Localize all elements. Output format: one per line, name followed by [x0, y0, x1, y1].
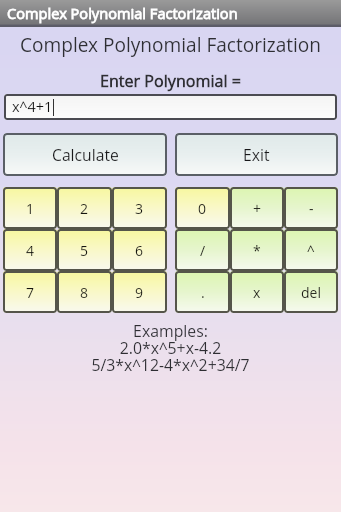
- staticText: Examples:: [0, 320, 341, 342]
- staticText: /: [200, 241, 206, 260]
- button[interactable]: Exit: [175, 133, 338, 176]
- staticText: 4: [26, 241, 35, 260]
- button[interactable]: 7: [3, 271, 57, 313]
- staticText: Enter Polynomial =: [0, 70, 341, 92]
- staticText: Calculate: [52, 144, 119, 165]
- staticText: +: [253, 199, 262, 218]
- button[interactable]: 0: [175, 187, 230, 229]
- button[interactable]: 1: [3, 187, 57, 229]
- staticText: ^: [307, 241, 315, 260]
- staticText: x^4+1: [12, 97, 53, 117]
- button[interactable]: 8: [57, 271, 112, 313]
- button[interactable]: ^: [284, 229, 338, 271]
- staticText: x: [253, 283, 261, 302]
- button[interactable]: Calculate: [3, 133, 167, 176]
- staticText: 6: [135, 241, 144, 260]
- button[interactable]: -: [284, 187, 338, 229]
- staticText: 1: [26, 199, 35, 218]
- button[interactable]: +: [230, 187, 284, 229]
- staticText: 2: [80, 199, 89, 218]
- staticText: Exit: [243, 144, 270, 165]
- button[interactable]: /: [175, 229, 230, 271]
- staticText: 8: [80, 283, 89, 302]
- button[interactable]: 3: [112, 187, 167, 229]
- button[interactable]: 9: [112, 271, 167, 313]
- button[interactable]: 5: [57, 229, 112, 271]
- staticText: 0: [198, 199, 207, 218]
- staticText: 3: [135, 199, 144, 218]
- button[interactable]: x: [230, 271, 284, 313]
- staticText: Complex Polynomial Factorization: [0, 32, 341, 58]
- staticText: -: [309, 199, 314, 218]
- staticText: .: [201, 283, 205, 302]
- button[interactable]: 6: [112, 229, 167, 271]
- button[interactable]: .: [175, 271, 230, 313]
- staticText: del: [301, 283, 321, 302]
- staticText: *: [253, 241, 261, 260]
- staticText: 5: [80, 241, 89, 260]
- button[interactable]: 4: [3, 229, 57, 271]
- staticText: 5/3*x^12-4*x^2+34/7: [0, 354, 341, 376]
- button[interactable]: *: [230, 229, 284, 271]
- staticText: Complex Polynomial Factorization: [7, 3, 238, 23]
- staticText: 7: [26, 283, 35, 302]
- staticText: 9: [135, 283, 144, 302]
- button[interactable]: del: [284, 271, 338, 313]
- staticText: 2.0*x^5+x-4.2: [0, 337, 341, 359]
- button[interactable]: x^4+1: [4, 94, 337, 120]
- button[interactable]: 2: [57, 187, 112, 229]
